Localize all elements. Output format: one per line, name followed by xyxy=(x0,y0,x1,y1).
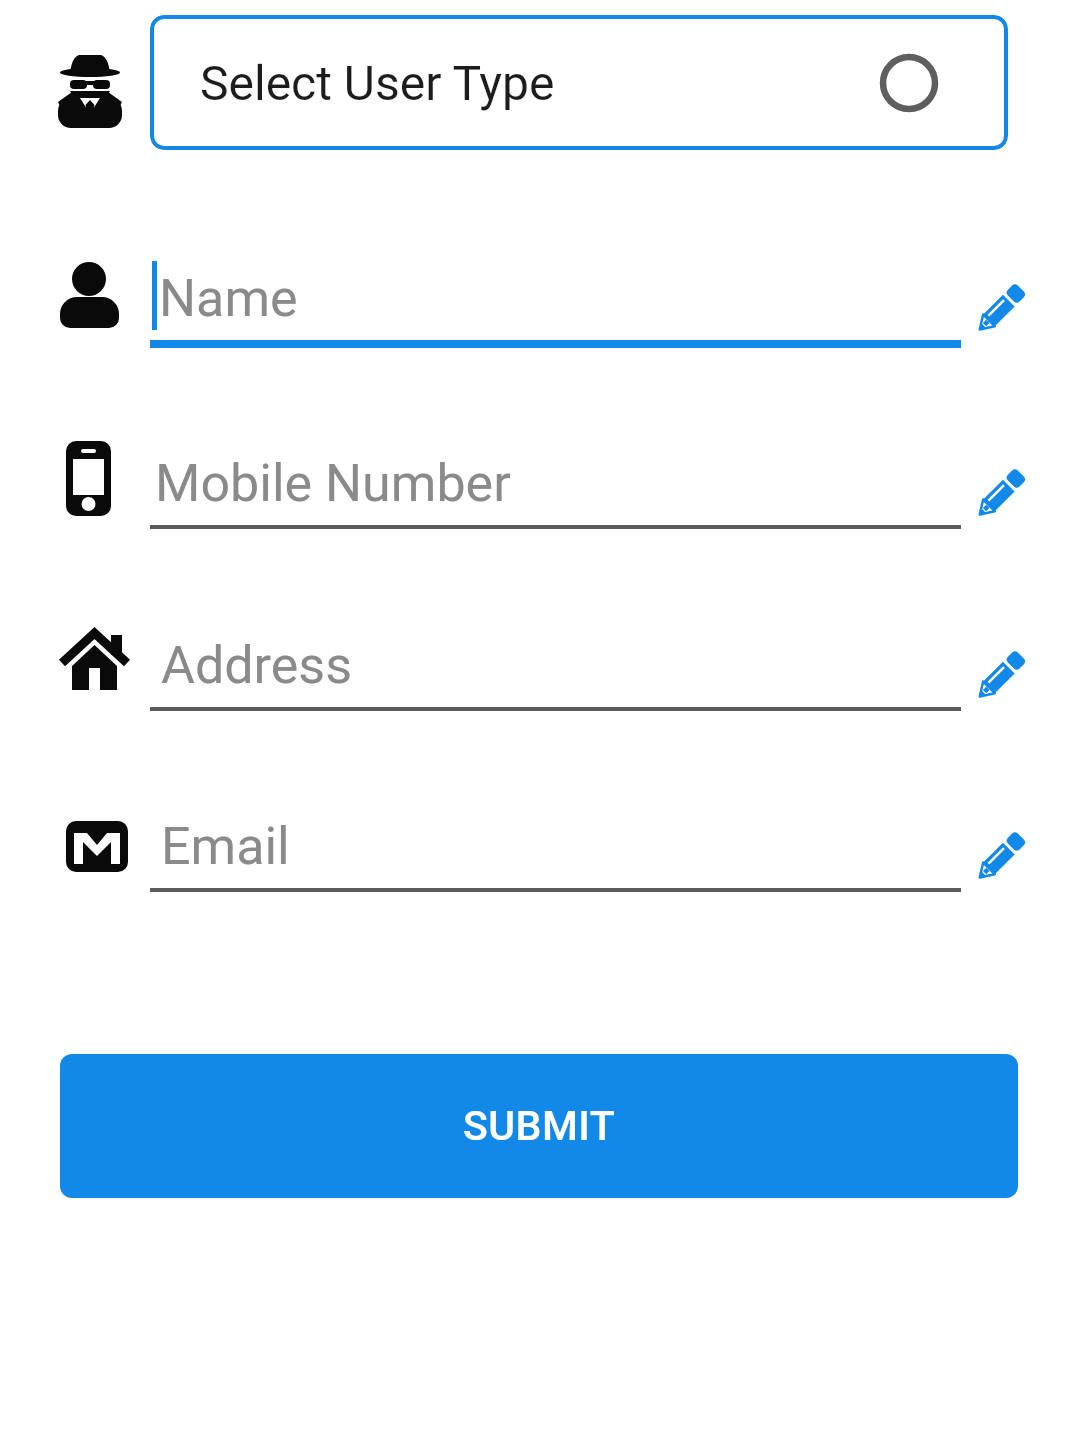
button[interactable]: Name xyxy=(159,258,809,338)
button[interactable]: Address xyxy=(161,625,811,705)
button[interactable]: SUBMIT xyxy=(60,1054,1018,1198)
staticText: SUBMIT xyxy=(463,1102,616,1150)
staticText: Name xyxy=(159,268,298,329)
button[interactable]: Email xyxy=(161,806,811,886)
staticText: Address xyxy=(161,635,352,696)
staticText: Mobile Number xyxy=(155,453,511,514)
button[interactable]: Select User Type xyxy=(150,15,1008,150)
button[interactable]: Mobile Number xyxy=(155,443,805,523)
staticText: Email xyxy=(161,816,290,877)
staticText: Select User Type xyxy=(200,55,555,111)
